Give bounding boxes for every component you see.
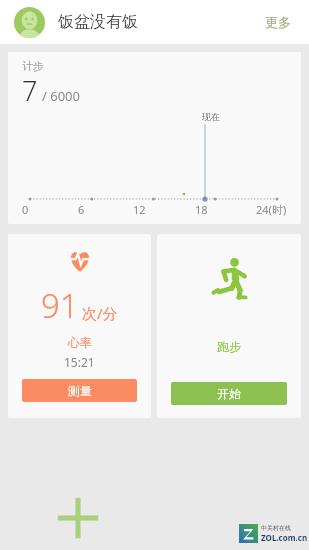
staticText: 计步 <box>22 59 44 73</box>
staticText: 测量 <box>68 383 92 398</box>
staticText: 中关村在线 <box>261 524 291 532</box>
button[interactable]: 91 <box>8 234 151 418</box>
staticText: 开始 <box>217 386 241 401</box>
staticText: 18 <box>195 202 208 217</box>
staticText: 15:21 <box>64 354 95 370</box>
staticText: ZOL.com.cn <box>261 532 308 543</box>
button[interactable]: Profile <box>14 7 45 38</box>
staticText: 91 <box>41 283 79 328</box>
staticText: 7 <box>22 72 38 109</box>
staticText: 心率 <box>68 335 92 350</box>
button[interactable]: 更多 <box>259 8 297 36</box>
staticText: 现在 <box>202 111 220 122</box>
button[interactable]: 测量 <box>22 379 137 402</box>
staticText: 饭盆没有饭 <box>58 12 138 32</box>
staticText: 6 <box>78 202 85 217</box>
staticText: 12 <box>133 202 146 217</box>
staticText: 0 <box>22 202 29 217</box>
staticText: / 6000 <box>42 87 80 105</box>
button[interactable]: 跑步 <box>157 234 301 418</box>
staticText: 更多 <box>265 14 291 30</box>
staticText: 24(时) <box>256 202 287 217</box>
staticText: 次/分 <box>82 303 118 323</box>
button[interactable]: Add <box>56 496 100 540</box>
button[interactable]: 开始 <box>171 382 287 405</box>
staticText: 跑步 <box>217 339 241 354</box>
button[interactable]: 计步 <box>8 52 301 224</box>
